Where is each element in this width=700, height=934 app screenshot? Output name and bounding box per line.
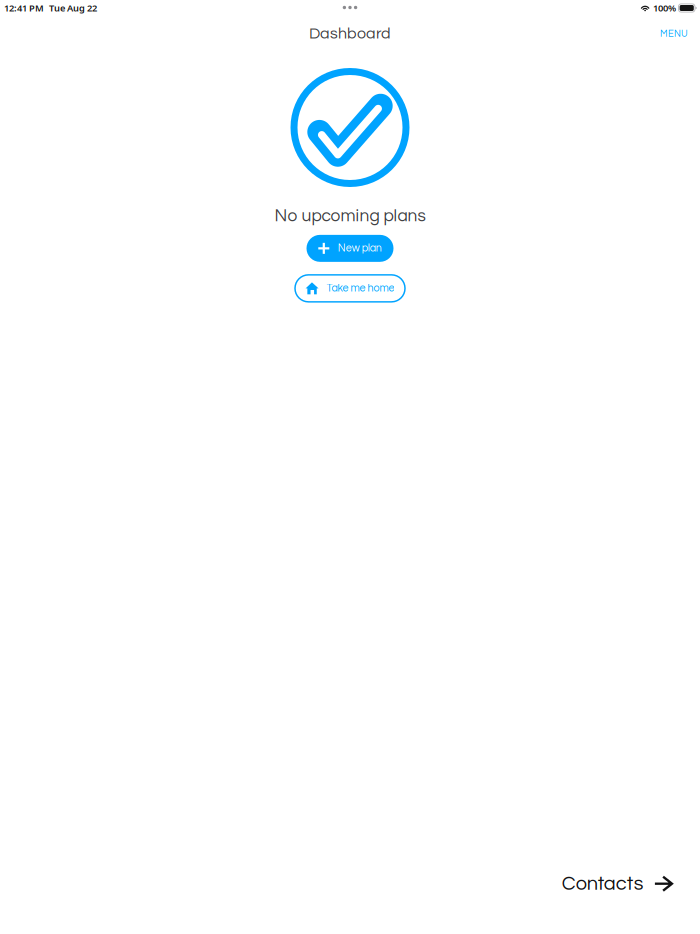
staticText: 100% — [653, 2, 676, 14]
staticText: No upcoming plans — [274, 207, 425, 225]
button[interactable]: Take me home — [295, 275, 405, 302]
button[interactable]: Contacts — [562, 863, 700, 904]
staticText: Take me home — [326, 283, 394, 294]
staticText: Tue Aug 22 — [49, 2, 97, 14]
staticText: Dashboard — [309, 25, 391, 42]
button[interactable]: New plan — [306, 235, 393, 262]
staticText: Contacts — [562, 873, 644, 894]
staticText: MENU — [660, 29, 688, 39]
staticText: 12:41 PM — [4, 2, 44, 14]
staticText: New plan — [338, 243, 382, 254]
button[interactable]: MENU — [648, 18, 700, 44]
